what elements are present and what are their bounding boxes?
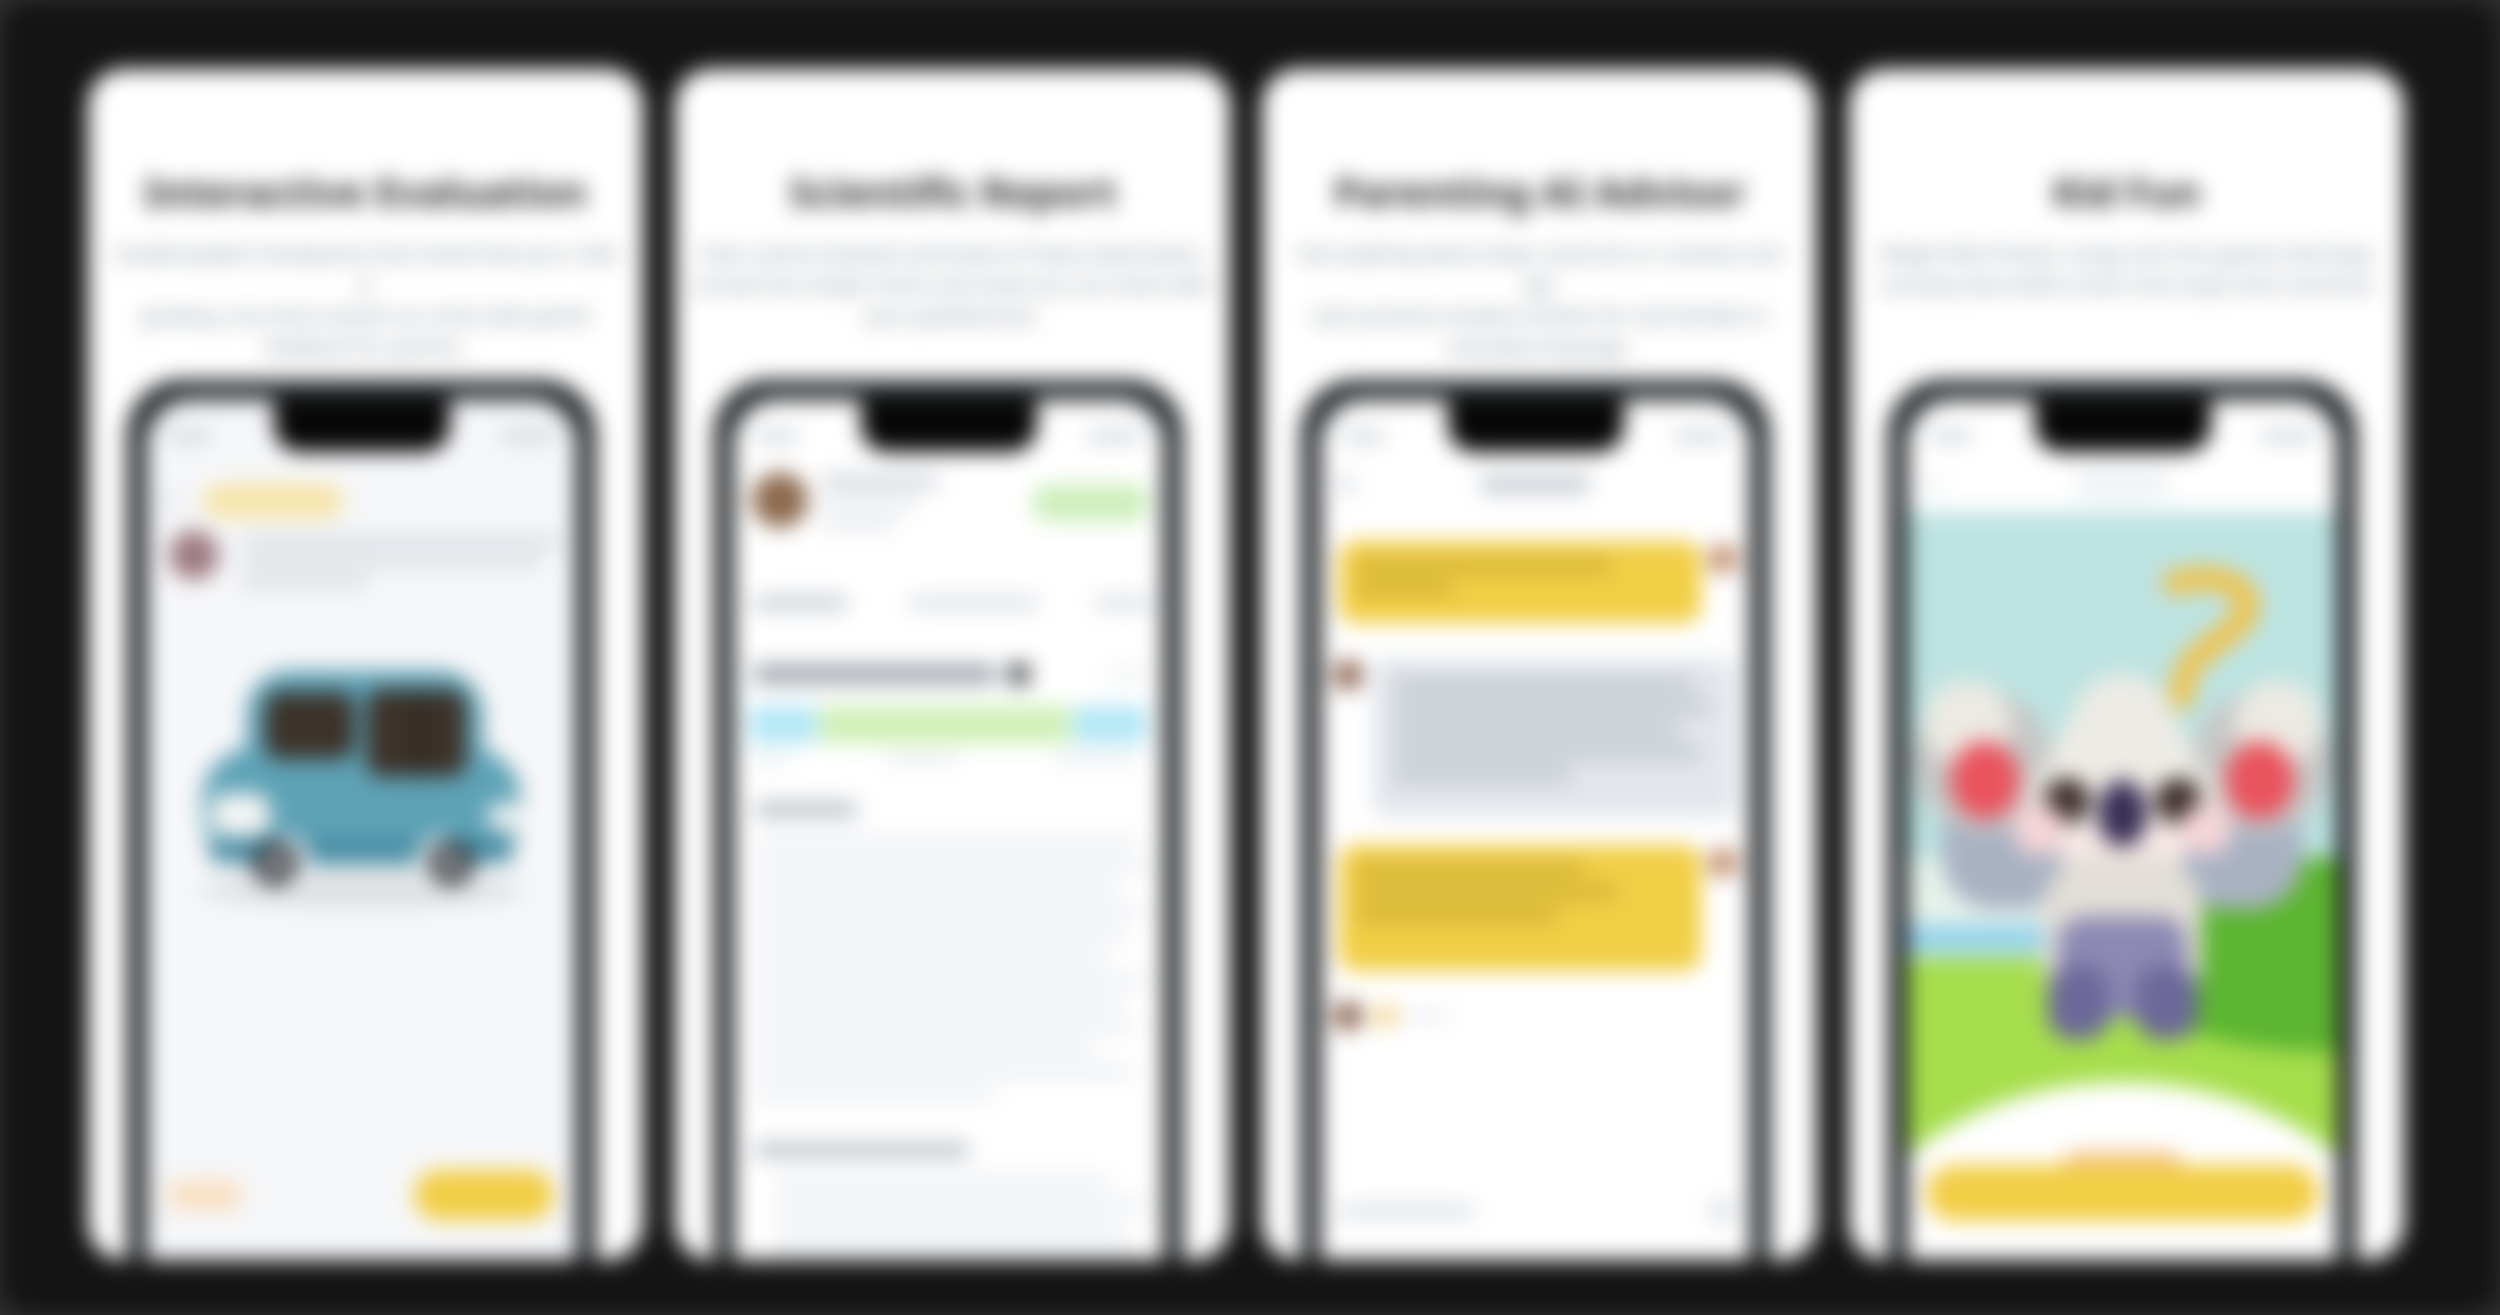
button[interactable]	[169, 530, 562, 589]
button[interactable]: Back	[163, 492, 181, 510]
button[interactable]	[1372, 658, 1736, 818]
button[interactable]: Kid Fun	[1849, 69, 2404, 1260]
button[interactable]: Scientific Report	[675, 69, 1230, 1260]
button[interactable]: Interactive Evaluation	[88, 69, 643, 1260]
staticText: Guided playful checkpoints that reveal h…	[106, 240, 625, 360]
button[interactable]	[203, 484, 343, 518]
staticText: Clear science backed summaries of every …	[694, 240, 1211, 329]
button[interactable]: Send	[1339, 1200, 1732, 1222]
staticText: Bright little friends, songs and mini ga…	[1878, 240, 2376, 298]
button[interactable]: Profile	[1708, 544, 1738, 574]
button[interactable]: Parenting AI Advisor	[1262, 69, 1817, 1260]
button[interactable]	[1339, 845, 1701, 971]
button[interactable]	[1031, 484, 1149, 522]
button[interactable]: Profile	[1708, 848, 1738, 878]
staticText: Kid Fun	[2052, 164, 2201, 218]
staticText: Parenting AI Advisor	[1334, 164, 1746, 218]
button[interactable]	[1339, 541, 1701, 623]
button[interactable]	[2074, 468, 2170, 498]
button[interactable]	[754, 596, 848, 610]
button[interactable]	[1926, 1165, 2319, 1221]
staticText: Ask anything about sleep, tantrums or ro…	[1280, 240, 1799, 360]
staticText: Scientific Report	[789, 164, 1117, 218]
button[interactable]	[1094, 596, 1153, 610]
button[interactable]: Info	[1007, 662, 1031, 686]
button[interactable]	[414, 1170, 554, 1220]
button[interactable]	[167, 1180, 243, 1210]
staticText: Interactive Evaluation	[144, 164, 587, 218]
